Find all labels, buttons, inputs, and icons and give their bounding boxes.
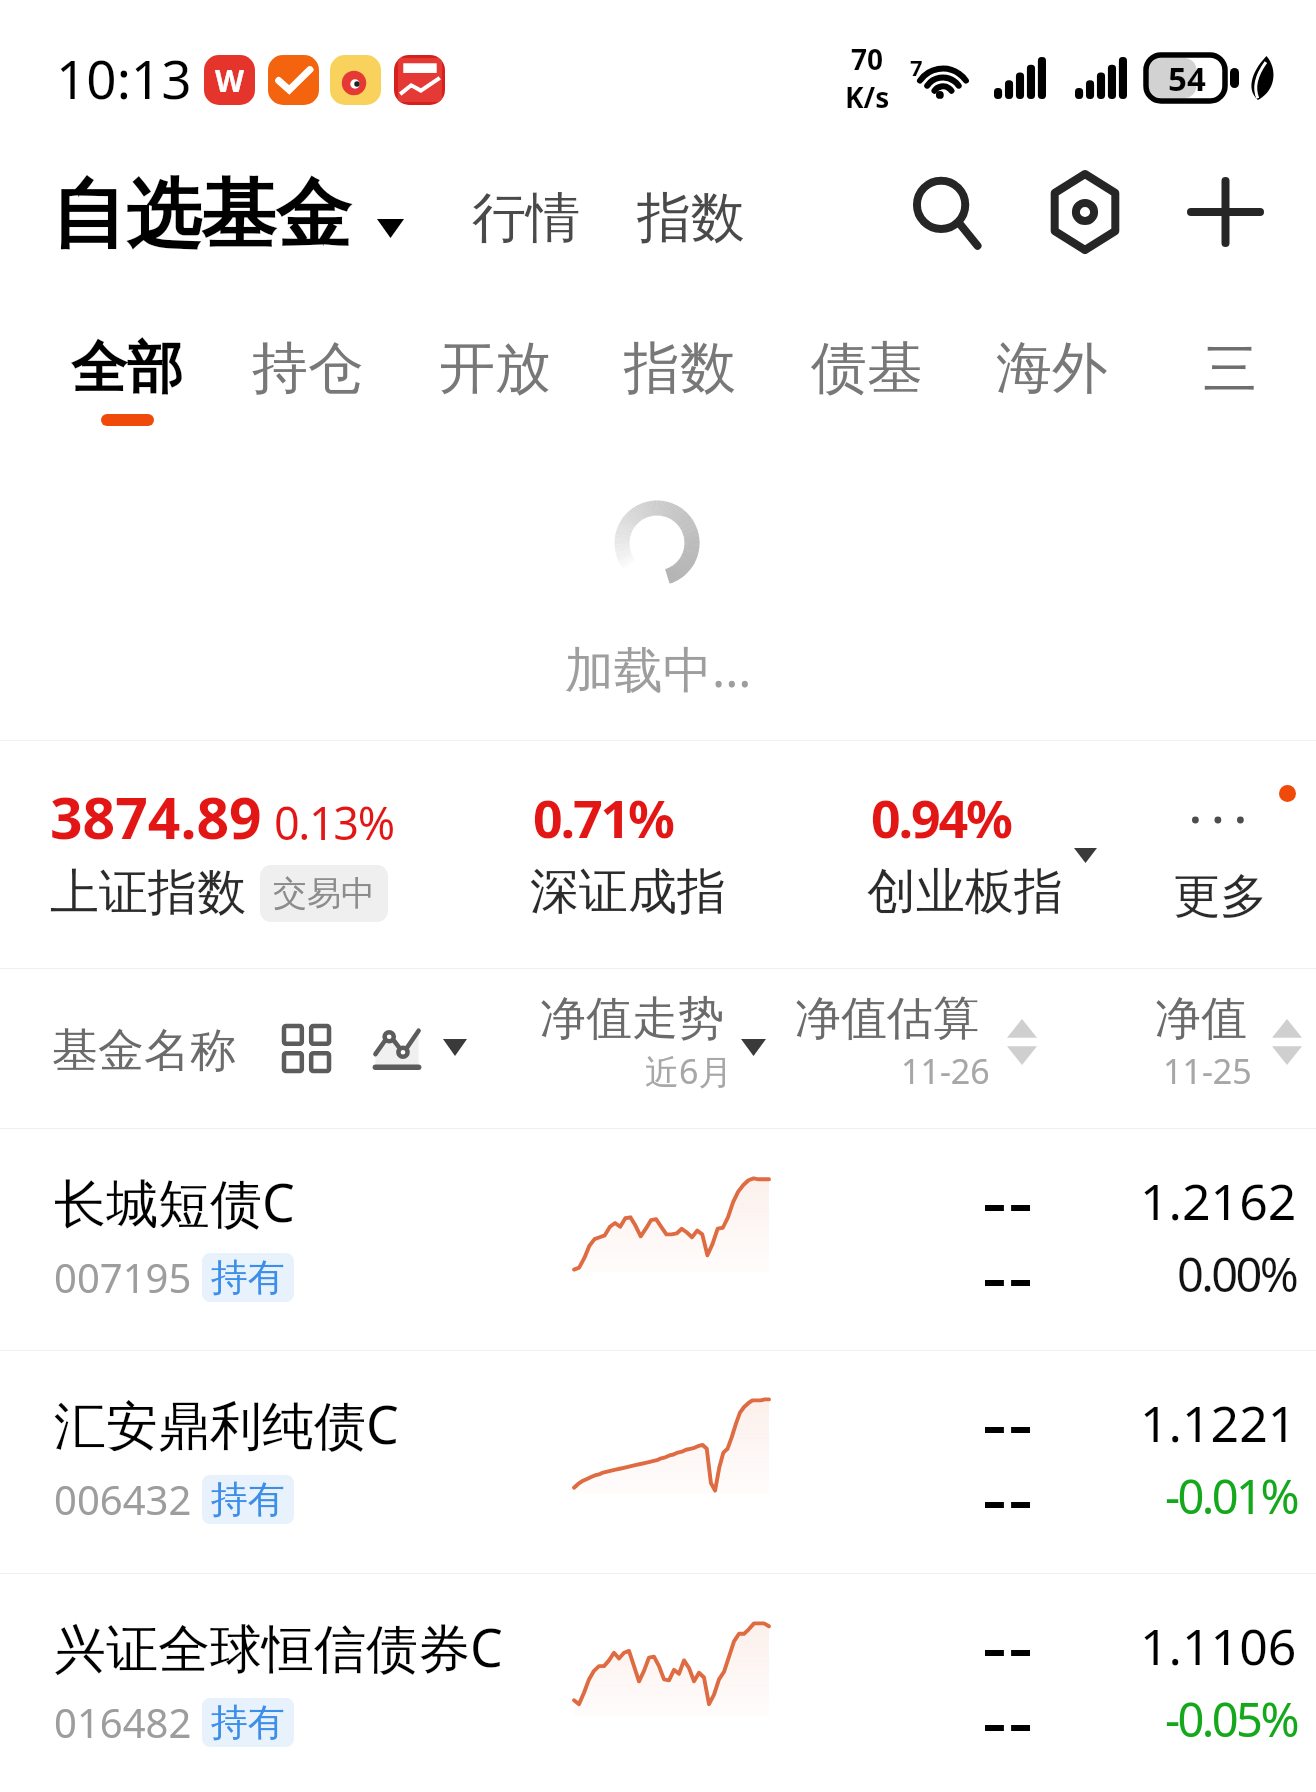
- staticText: 持仓: [252, 333, 364, 404]
- button[interactable]: 开放: [439, 333, 551, 414]
- button[interactable]: 自选基金: [51, 168, 404, 262]
- staticText: 1.1221: [1140, 1389, 1297, 1457]
- button[interactable]: 3874.89: [50, 778, 394, 856]
- staticText: 006432: [54, 1472, 192, 1526]
- staticText: -0.01%: [1165, 1464, 1297, 1528]
- staticText: 10:13: [56, 42, 192, 114]
- staticText: 汇安鼎利纯债C: [54, 1388, 399, 1459]
- staticText: 0.13%: [274, 792, 394, 853]
- staticText: 净值走势: [540, 990, 724, 1048]
- button[interactable]: 净值走势: [540, 990, 740, 1100]
- staticText: 海外: [996, 333, 1108, 404]
- button[interactable]: 兴证全球恒信债券C: [0, 1573, 1316, 1792]
- button[interactable]: Scan: [1040, 162, 1130, 262]
- staticText: 全部: [71, 333, 183, 404]
- staticText: 0.00%: [1177, 1242, 1297, 1306]
- staticText: 长城短债C: [54, 1166, 295, 1237]
- staticText: 11-25: [1163, 1048, 1252, 1094]
- staticText: 3874.89: [50, 778, 262, 856]
- staticText: 净值估算: [795, 990, 979, 1048]
- staticText: 加载中...: [565, 635, 752, 702]
- button[interactable]: 更多: [1160, 800, 1290, 920]
- button[interactable]: 0.71%: [533, 782, 673, 853]
- staticText: -0.05%: [1165, 1687, 1297, 1751]
- button[interactable]: [282, 1024, 331, 1074]
- button[interactable]: 海外: [996, 333, 1108, 414]
- staticText: 54: [1168, 56, 1206, 101]
- staticText: 三: [1203, 335, 1257, 403]
- staticText: 持有: [211, 1699, 285, 1746]
- button[interactable]: 债基: [811, 333, 923, 414]
- button[interactable]: 指数: [637, 184, 745, 252]
- staticText: 创业板指: [867, 861, 1063, 923]
- button[interactable]: Search: [900, 164, 992, 260]
- button[interactable]: 全部: [71, 333, 183, 426]
- button[interactable]: 持仓: [252, 333, 364, 414]
- button[interactable]: 指数: [624, 333, 736, 414]
- staticText: 更多: [1173, 867, 1267, 926]
- staticText: 持有: [211, 1476, 285, 1523]
- staticText: 兴证全球恒信债券C: [54, 1611, 503, 1682]
- staticText: 11-26: [901, 1048, 990, 1094]
- staticText: W: [215, 60, 245, 101]
- staticText: 1.2162: [1140, 1167, 1297, 1235]
- button[interactable]: 汇安鼎利纯债C: [0, 1350, 1316, 1572]
- staticText: 交易中: [273, 872, 375, 915]
- staticText: 开放: [439, 333, 551, 404]
- staticText: 指数: [624, 333, 736, 404]
- staticText: 近6月: [645, 1048, 733, 1094]
- staticText: 1.1106: [1140, 1612, 1297, 1680]
- staticText: 债基: [811, 333, 923, 404]
- staticText: 016482: [54, 1695, 192, 1749]
- button[interactable]: 行情: [472, 184, 580, 252]
- staticText: 自选基金: [51, 168, 351, 262]
- staticText: 深证成指: [530, 861, 726, 923]
- staticText: 007195: [54, 1250, 192, 1304]
- staticText: K/s: [845, 78, 890, 116]
- staticText: 净值: [1155, 990, 1247, 1048]
- staticText: 70: [851, 40, 884, 78]
- button[interactable]: [374, 1025, 420, 1072]
- button[interactable]: Add: [1180, 164, 1270, 260]
- button[interactable]: 长城短债C: [0, 1128, 1316, 1350]
- staticText: 上证指数: [50, 862, 246, 924]
- staticText: 7: [910, 52, 923, 82]
- button[interactable]: 净值估算: [795, 990, 1035, 1100]
- button[interactable]: 净值: [1155, 990, 1316, 1100]
- button[interactable]: 0.94%: [871, 782, 1011, 853]
- button[interactable]: All categories: [1196, 334, 1264, 404]
- staticText: 持有: [211, 1254, 285, 1301]
- staticText: 基金名称: [52, 1022, 236, 1080]
